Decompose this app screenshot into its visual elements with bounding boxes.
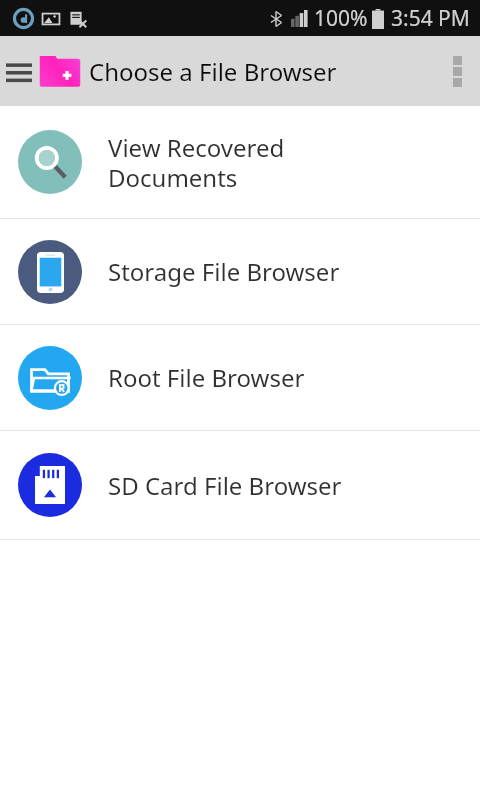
button[interactable]: More options (434, 43, 480, 99)
button[interactable]: View Recovered Documents (0, 106, 480, 218)
staticText: 3:54 PM (391, 4, 470, 33)
staticText: Choose a File Browser (89, 55, 337, 88)
button[interactable]: New folder (37, 48, 83, 94)
staticText: SD Card File Browser (108, 469, 342, 502)
staticText: Root File Browser (108, 361, 305, 394)
button[interactable]: Storage File Browser (0, 219, 480, 324)
staticText: View Recovered Documents (108, 131, 285, 194)
button[interactable]: SD Card File Browser (0, 431, 480, 539)
staticText: 100% (314, 4, 368, 33)
button[interactable]: Open navigation menu (4, 56, 34, 86)
staticText: Storage File Browser (108, 255, 340, 288)
button[interactable]: Root File Browser (0, 325, 480, 430)
